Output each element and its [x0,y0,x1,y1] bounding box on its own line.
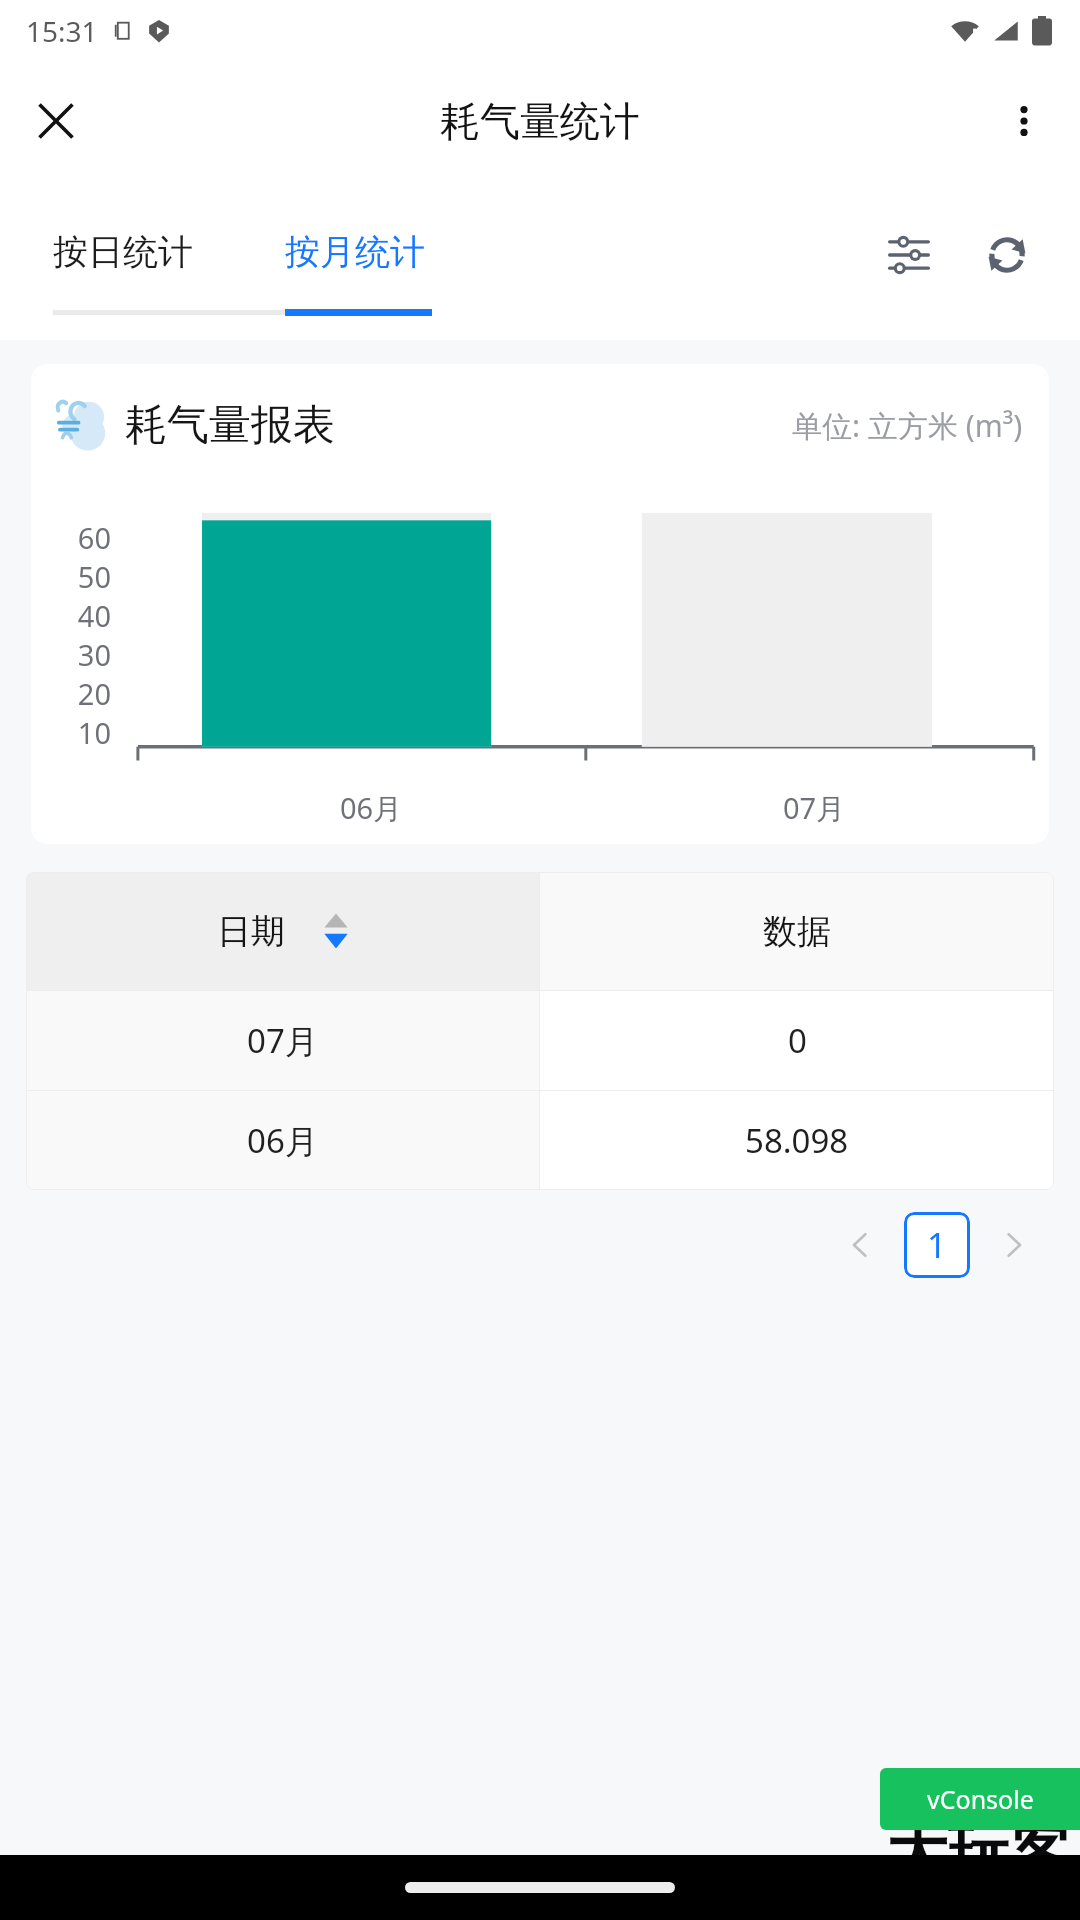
button[interactable]: Close [20,85,92,157]
staticText: 单位: 立方米 (m³) [792,405,1023,446]
staticText: 20 [49,674,111,713]
staticText: 10 [49,713,111,752]
button[interactable]: Filter [874,220,944,290]
staticText: 58.098 [745,1118,849,1163]
button[interactable]: 按月统计 [285,222,433,282]
staticText: 按月统计 [285,230,425,274]
button[interactable]: 按日统计 [53,222,201,282]
button[interactable]: 数据 [540,872,1054,990]
staticText: 07月 [783,788,846,828]
staticText: vConsole [927,1782,1034,1816]
button[interactable]: 07月 [26,991,1054,1090]
staticText: 日期 [217,910,285,953]
staticText: 耗气量统计 [440,96,640,146]
staticText: 按日统计 [53,230,193,274]
staticText: 1 [927,1222,947,1268]
staticText: 50 [49,557,111,596]
staticText: 大玩客 [886,1814,1072,1892]
staticText: 06月 [340,788,403,828]
button[interactable]: Refresh [972,220,1042,290]
staticText: 30 [49,635,111,674]
staticText: 40 [49,596,111,635]
staticText: 15:31 [26,12,98,50]
staticText: 0 [788,1018,807,1063]
button[interactable]: vConsole [880,1768,1080,1830]
staticText: 06月 [247,1118,318,1163]
button[interactable]: 日期 [26,872,539,990]
staticText: 07月 [247,1018,318,1063]
button[interactable]: 06月 [26,1091,1054,1190]
staticText: 数据 [763,910,831,953]
staticText: 60 [49,518,111,557]
button[interactable]: Previous page [830,1215,890,1275]
staticText: 耗气量报表 [125,399,335,452]
button[interactable]: 1 [904,1212,970,1278]
button[interactable]: More options [988,85,1060,157]
button[interactable]: Next page [984,1215,1044,1275]
